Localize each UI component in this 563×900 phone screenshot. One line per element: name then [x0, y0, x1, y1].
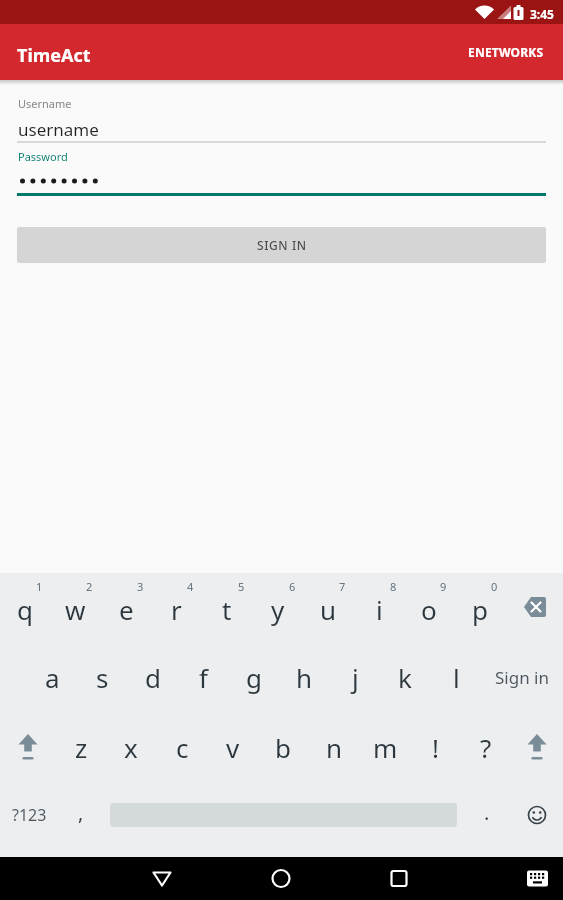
staticText: 3:45: [530, 6, 554, 22]
staticText: 0: [491, 579, 498, 594]
button[interactable]: ?: [461, 721, 511, 773]
staticText: z: [75, 730, 88, 765]
staticText: y: [271, 592, 285, 627]
button[interactable]: [257, 857, 305, 900]
button[interactable]: [514, 793, 560, 837]
staticText: f: [199, 660, 208, 695]
staticText: m: [373, 730, 398, 765]
staticText: g: [246, 660, 262, 695]
staticText: l: [453, 660, 460, 695]
button[interactable]: [517, 857, 557, 900]
button[interactable]: Sign in: [486, 651, 558, 703]
staticText: 6: [289, 579, 296, 594]
staticText: s: [96, 660, 109, 695]
button[interactable]: v: [208, 721, 258, 773]
staticText: u: [320, 592, 337, 627]
button[interactable]: k: [380, 651, 430, 703]
staticText: 8: [390, 579, 397, 594]
staticText: b: [275, 730, 291, 765]
button[interactable]: a: [27, 651, 77, 703]
button[interactable]: x: [106, 721, 156, 773]
button[interactable]: i: [354, 583, 404, 635]
button[interactable]: [514, 721, 560, 773]
button[interactable]: l: [431, 651, 481, 703]
button[interactable]: g: [229, 651, 279, 703]
button[interactable]: f: [178, 651, 228, 703]
button[interactable]: SIGN IN: [17, 227, 546, 263]
staticText: ?: [480, 730, 492, 765]
staticText: Sign in: [495, 666, 549, 689]
button[interactable]: n: [309, 721, 359, 773]
staticText: 3: [137, 579, 144, 594]
button[interactable]: o: [404, 583, 454, 635]
button[interactable]: t: [202, 583, 252, 635]
staticText: k: [398, 660, 412, 695]
button[interactable]: u: [303, 583, 353, 635]
button[interactable]: z: [56, 721, 106, 773]
staticText: ,: [78, 799, 84, 826]
button[interactable]: q: [0, 583, 50, 635]
button[interactable]: c: [157, 721, 207, 773]
staticText: a: [45, 660, 60, 695]
staticText: SIGN IN: [257, 237, 307, 253]
button[interactable]: ?123: [3, 793, 55, 837]
staticText: 7: [339, 579, 346, 594]
staticText: 5: [238, 579, 245, 594]
button[interactable]: h: [279, 651, 329, 703]
staticText: 4: [187, 579, 194, 594]
button[interactable]: d: [128, 651, 178, 703]
button[interactable]: p: [455, 583, 505, 635]
button[interactable]: j: [330, 651, 380, 703]
staticText: 9: [440, 579, 447, 594]
staticText: Username: [18, 96, 72, 111]
staticText: !: [432, 730, 439, 765]
staticText: ENETWORKS: [468, 44, 544, 60]
button[interactable]: [5, 721, 51, 773]
staticText: TimeAct: [17, 43, 91, 68]
staticText: 1: [36, 579, 43, 594]
button[interactable]: ,: [56, 786, 106, 838]
staticText: x: [124, 730, 138, 765]
staticText: d: [145, 660, 161, 695]
staticText: o: [421, 592, 437, 627]
button[interactable]: b: [258, 721, 308, 773]
button[interactable]: w: [50, 583, 100, 635]
staticText: p: [472, 592, 488, 627]
staticText: q: [17, 592, 33, 627]
staticText: h: [296, 660, 313, 695]
button[interactable]: m: [360, 721, 410, 773]
button[interactable]: !: [410, 721, 460, 773]
staticText: n: [326, 730, 343, 765]
staticText: ?123: [12, 804, 47, 826]
staticText: w: [65, 592, 86, 627]
staticText: r: [171, 592, 182, 627]
staticText: c: [176, 730, 189, 765]
staticText: e: [119, 592, 134, 627]
staticText: v: [226, 730, 240, 765]
staticText: j: [352, 660, 359, 695]
staticText: 2: [86, 579, 93, 594]
button[interactable]: s: [77, 651, 127, 703]
button[interactable]: [512, 587, 558, 631]
button[interactable]: e: [101, 583, 151, 635]
staticText: t: [222, 592, 232, 627]
button[interactable]: ENETWORKS: [458, 24, 554, 80]
button[interactable]: r: [151, 583, 201, 635]
button[interactable]: [138, 857, 186, 900]
button[interactable]: y: [253, 583, 303, 635]
button[interactable]: .: [462, 786, 512, 838]
button[interactable]: [375, 857, 423, 900]
staticText: username: [18, 118, 99, 141]
staticText: .: [484, 799, 490, 826]
staticText: Password: [18, 149, 68, 164]
staticText: i: [376, 592, 383, 627]
